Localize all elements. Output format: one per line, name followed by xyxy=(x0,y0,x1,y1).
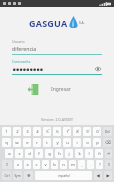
button[interactable]: x xyxy=(24,160,31,169)
staticText: " xyxy=(19,127,20,130)
button[interactable]: 4 xyxy=(33,127,41,136)
button[interactable]: a xyxy=(5,149,13,158)
button[interactable]: 1 xyxy=(2,127,11,136)
button[interactable]: 0 xyxy=(93,127,101,136)
button[interactable]: u xyxy=(63,138,71,147)
button[interactable]: . xyxy=(87,160,94,169)
staticText: j xyxy=(68,151,70,157)
button[interactable]: t xyxy=(43,138,51,147)
staticText: 1 xyxy=(5,129,8,135)
button[interactable]: 7 xyxy=(63,127,71,136)
staticText: Ctrl xyxy=(4,174,10,178)
staticText: o xyxy=(86,140,89,146)
staticText: y xyxy=(56,140,59,146)
button[interactable]: Mostrar contraseña xyxy=(94,65,102,73)
button[interactable]: k xyxy=(75,149,83,158)
staticText: s xyxy=(18,151,21,157)
button[interactable]: español xyxy=(35,171,92,180)
button[interactable]: 9 xyxy=(83,127,91,136)
staticText: u xyxy=(66,140,69,146)
button[interactable]: Ctrl xyxy=(2,171,11,180)
button[interactable]: o xyxy=(83,138,91,147)
staticText: 2 xyxy=(16,129,19,135)
button[interactable]: e xyxy=(23,138,31,147)
staticText: S.A. xyxy=(79,21,85,25)
staticText: ) xyxy=(99,127,100,130)
staticText: Ingresar xyxy=(51,86,71,93)
staticText: b xyxy=(53,162,56,168)
button[interactable]: 3 xyxy=(23,127,31,136)
staticText: 8 xyxy=(76,129,79,135)
button[interactable]: ⇧ xyxy=(105,160,112,169)
button[interactable]: i xyxy=(73,138,81,147)
button[interactable]: j xyxy=(65,149,73,158)
staticText: Sym xyxy=(14,174,21,178)
staticText: Contraseña xyxy=(12,59,31,64)
staticText: w xyxy=(15,140,19,146)
staticText: 3 xyxy=(26,129,29,135)
staticText: ⇧ xyxy=(5,162,9,167)
button[interactable]: ? xyxy=(96,160,103,169)
staticText: m xyxy=(71,162,75,168)
button[interactable]: l xyxy=(85,149,93,158)
button[interactable]: f xyxy=(35,149,43,158)
staticText: español xyxy=(58,174,70,178)
button[interactable]: p xyxy=(93,138,101,147)
button[interactable]: Del xyxy=(103,127,112,136)
button[interactable]: Sym xyxy=(13,171,22,180)
staticText: . xyxy=(90,162,92,168)
button[interactable]: n xyxy=(60,160,67,169)
staticText: z xyxy=(17,162,19,168)
button[interactable]: 8 xyxy=(73,127,81,136)
staticText: ▶ xyxy=(106,173,110,178)
staticText: r xyxy=(36,140,38,146)
staticText: e xyxy=(26,140,29,146)
staticText: 6 xyxy=(56,129,59,135)
button[interactable]: Usuario xyxy=(12,39,102,55)
button[interactable]: d xyxy=(25,149,33,158)
staticText: 5 xyxy=(46,129,49,135)
button[interactable]: Contraseña xyxy=(12,59,102,75)
staticText: g xyxy=(48,151,51,157)
staticText: & xyxy=(68,127,70,130)
staticText: q xyxy=(5,140,8,146)
button[interactable]: 6 xyxy=(53,127,61,136)
button[interactable]: ⇧ xyxy=(2,160,12,169)
staticText: % xyxy=(48,127,50,130)
staticText: 4 xyxy=(36,129,39,135)
staticText: 0 xyxy=(96,129,99,135)
button[interactable]: Ingresar xyxy=(0,84,114,95)
staticText: t xyxy=(46,140,48,146)
button[interactable]: g xyxy=(45,149,53,158)
staticText: ? xyxy=(99,162,101,168)
staticText: Del xyxy=(105,130,110,134)
button[interactable]: m xyxy=(69,160,76,169)
button[interactable]: w xyxy=(13,138,21,147)
staticText: Version: 2.0-ASSIST xyxy=(0,117,114,122)
button[interactable]: 5 xyxy=(43,127,51,136)
staticText: ☸ xyxy=(27,173,31,178)
staticText: c xyxy=(35,162,38,168)
button[interactable]: ↵ xyxy=(105,149,112,158)
button[interactable]: h xyxy=(55,149,63,158)
staticText: l xyxy=(88,151,90,157)
staticText: k xyxy=(78,151,81,157)
button[interactable]: ▶ xyxy=(104,171,112,180)
button[interactable]: c xyxy=(33,160,40,169)
button[interactable]: q xyxy=(2,138,11,147)
button[interactable]: b xyxy=(51,160,58,169)
button[interactable]: ⌫ xyxy=(103,138,112,147)
button[interactable]: ☸ xyxy=(24,171,33,180)
button[interactable]: r xyxy=(33,138,41,147)
button[interactable]: s xyxy=(15,149,23,158)
button[interactable]: ◀ xyxy=(94,171,102,180)
button[interactable]: z xyxy=(14,160,22,169)
button[interactable]: y xyxy=(53,138,61,147)
staticText: 9 xyxy=(86,129,89,135)
button[interactable]: , xyxy=(78,160,85,169)
button[interactable]: v xyxy=(42,160,49,169)
staticText: 7 xyxy=(66,129,69,135)
button[interactable]: 2 xyxy=(13,127,21,136)
staticText: d xyxy=(28,151,31,157)
button[interactable]: ñ xyxy=(95,149,103,158)
